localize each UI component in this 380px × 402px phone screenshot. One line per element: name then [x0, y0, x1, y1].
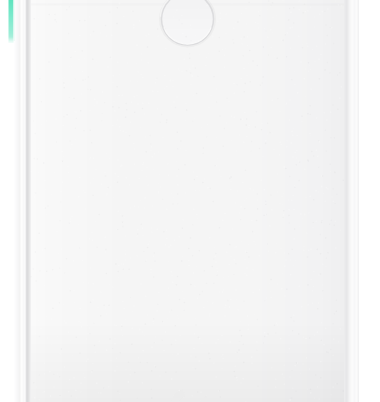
button[interactable]: Google Pixel phone, rear view, white	[0, 0, 380, 402]
